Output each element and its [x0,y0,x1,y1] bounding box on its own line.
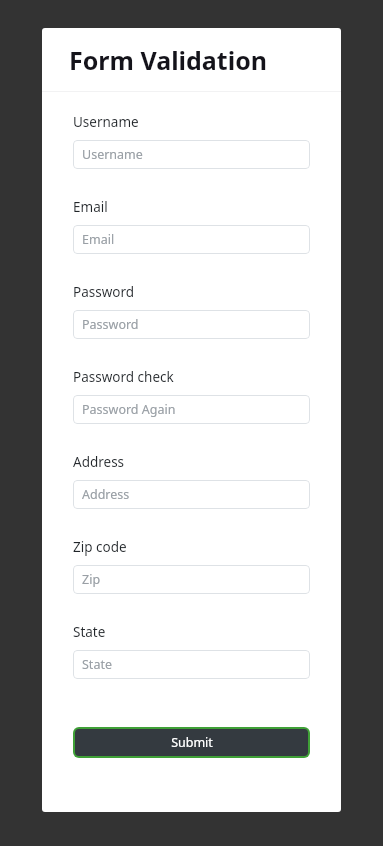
staticText: Username [73,113,139,131]
staticText: Zip code [73,538,127,556]
staticText: Form Validation [69,43,268,77]
staticText: Password Again [82,401,176,418]
staticText: Password [82,316,139,333]
staticText: Password check [73,368,174,386]
button[interactable]: Submit [73,727,310,758]
button[interactable]: Zip [73,565,310,594]
staticText: Password [73,283,135,301]
staticText: Address [82,486,130,503]
staticText: Username [82,146,143,163]
staticText: Submit [171,734,213,751]
button[interactable]: Password Again [73,395,310,424]
button[interactable]: Email [73,225,310,254]
staticText: Email [73,198,108,216]
staticText: Email [82,231,115,248]
button[interactable]: State [73,650,310,679]
button[interactable]: Password [73,310,310,339]
staticText: Address [73,453,125,471]
button[interactable]: Username [73,140,310,169]
staticText: Zip [82,571,101,588]
staticText: State [82,656,112,673]
button[interactable]: Address [73,480,310,509]
staticText: State [73,623,106,641]
